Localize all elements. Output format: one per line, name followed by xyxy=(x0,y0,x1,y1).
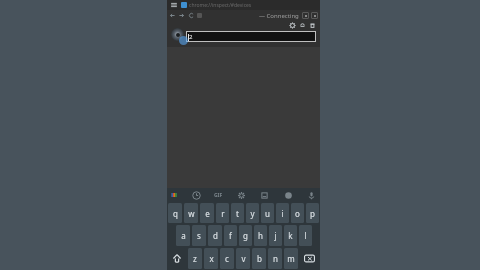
button[interactable]: Delete xyxy=(309,22,316,29)
staticText: b xyxy=(257,253,262,264)
staticText: o xyxy=(295,208,300,219)
button[interactable]: w xyxy=(184,203,198,223)
button[interactable]: m xyxy=(284,248,298,269)
staticText: t xyxy=(236,208,239,219)
staticText: a xyxy=(181,230,186,241)
button[interactable]: e xyxy=(200,203,214,223)
button[interactable]: z xyxy=(188,248,202,269)
staticText: j xyxy=(274,230,277,241)
staticText: d xyxy=(213,230,218,241)
button[interactable]: Tool xyxy=(302,12,309,19)
button[interactable]: s xyxy=(192,225,206,246)
staticText: GIF xyxy=(214,192,223,199)
staticText: x xyxy=(209,253,214,264)
button[interactable]: x xyxy=(204,248,218,269)
staticText: w xyxy=(188,208,195,219)
button[interactable]: l xyxy=(299,225,312,246)
button[interactable]: Theme xyxy=(283,190,294,201)
staticText: k xyxy=(288,230,293,241)
button[interactable]: Forward xyxy=(178,12,185,19)
staticText: — Connecting xyxy=(259,12,299,20)
button[interactable]: Gboard menu xyxy=(170,191,178,199)
button[interactable]: y xyxy=(246,203,259,223)
staticText: f xyxy=(229,230,232,241)
button[interactable]: t xyxy=(231,203,244,223)
staticText: c xyxy=(225,253,229,264)
button[interactable]: j xyxy=(269,225,282,246)
button[interactable]: Back xyxy=(169,12,176,19)
button[interactable]: Notifications xyxy=(299,22,306,29)
button[interactable]: Menu xyxy=(170,1,178,9)
button[interactable]: u xyxy=(261,203,274,223)
staticText: z xyxy=(193,253,197,264)
button[interactable]: Shift xyxy=(168,248,186,269)
staticText: q xyxy=(173,208,178,219)
button[interactable]: d xyxy=(208,225,222,246)
button[interactable]: p xyxy=(306,203,319,223)
button[interactable]: g xyxy=(239,225,252,246)
button[interactable]: Translate xyxy=(259,190,270,201)
button[interactable]: f xyxy=(224,225,237,246)
staticText: 2 xyxy=(189,33,193,41)
button[interactable]: Backspace xyxy=(300,248,319,269)
button[interactable]: b xyxy=(252,248,266,269)
button[interactable]: Voice input xyxy=(306,190,317,201)
button[interactable]: Tool xyxy=(311,12,318,19)
staticText: n xyxy=(273,253,278,264)
staticText: s xyxy=(197,230,201,241)
staticText: l xyxy=(304,230,307,241)
button[interactable]: Reload xyxy=(188,12,195,19)
button[interactable]: i xyxy=(276,203,289,223)
button[interactable]: GIF xyxy=(214,192,223,199)
button[interactable]: v xyxy=(236,248,250,269)
button[interactable]: h xyxy=(254,225,267,246)
staticText: g xyxy=(243,230,248,241)
staticText: m xyxy=(287,253,295,264)
button[interactable]: Settings xyxy=(289,22,296,29)
button[interactable]: q xyxy=(168,203,182,223)
button[interactable]: r xyxy=(216,203,229,223)
staticText: p xyxy=(310,208,315,219)
button[interactable]: Stickers xyxy=(191,190,202,201)
button[interactable]: c xyxy=(220,248,234,269)
button[interactable]: a xyxy=(176,225,190,246)
staticText: chrome://inspect/#devices xyxy=(189,2,252,9)
staticText: v xyxy=(241,253,246,264)
staticText: r xyxy=(221,208,225,219)
staticText: e xyxy=(205,208,210,219)
staticText: y xyxy=(250,208,255,219)
button[interactable]: o xyxy=(291,203,304,223)
button[interactable]: 2 xyxy=(186,31,316,42)
button[interactable]: k xyxy=(284,225,297,246)
button[interactable]: Settings xyxy=(236,190,247,201)
staticText: u xyxy=(265,208,270,219)
staticText: i xyxy=(281,208,284,219)
button[interactable]: n xyxy=(268,248,282,269)
staticText: h xyxy=(258,230,263,241)
